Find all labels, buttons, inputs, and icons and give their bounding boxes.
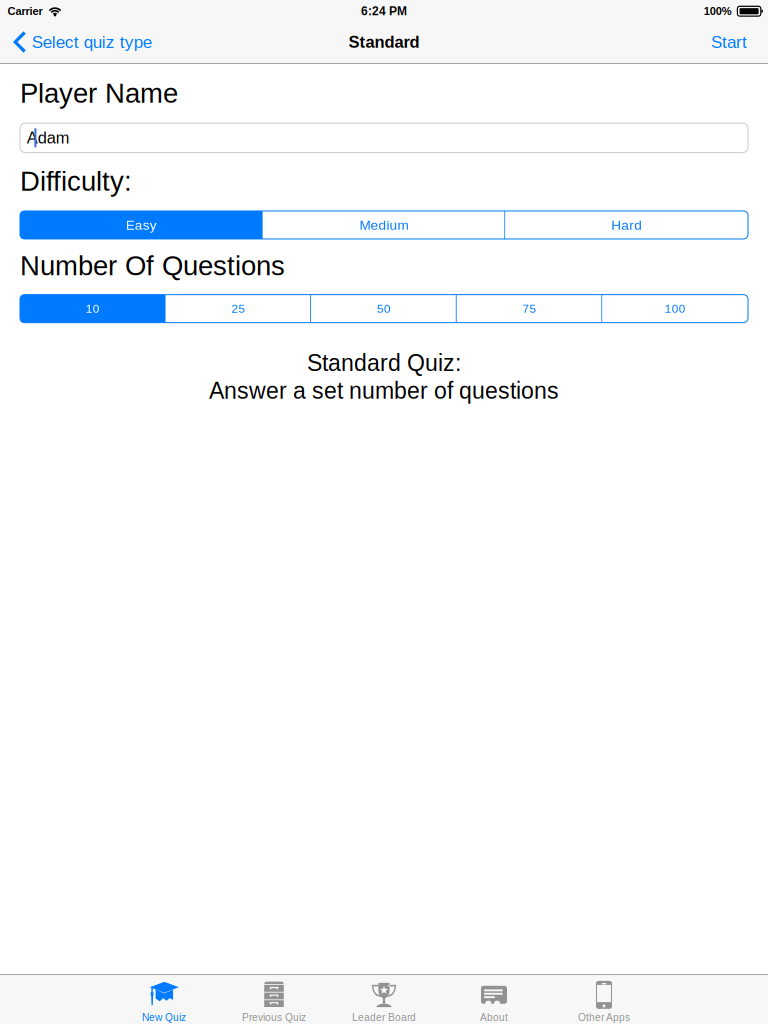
staticText: 25 [231,302,245,315]
staticText: Number Of Questions [20,250,285,281]
button[interactable]: About [439,974,549,1024]
button[interactable]: 100 [602,295,748,323]
button[interactable]: Hard [505,211,748,239]
button[interactable]: 75 [457,295,602,323]
staticText: Carrier [7,5,42,17]
staticText: 50 [377,302,391,315]
button[interactable]: New Quiz [109,974,219,1024]
button[interactable]: Adam [20,123,748,153]
button[interactable]: 50 [311,295,457,323]
button[interactable]: Select quiz type [0,20,162,64]
staticText: Hard [611,217,642,233]
staticText: Start [711,32,747,52]
staticText: Medium [359,217,408,233]
button[interactable]: Leader Board [329,974,439,1024]
staticText: Standard [348,33,419,51]
staticText: Other Apps [578,1012,630,1023]
button[interactable]: 25 [166,295,311,323]
staticText: Adam [27,129,70,147]
button[interactable]: Easy [20,211,263,239]
staticText: Standard Quiz: [307,350,461,376]
staticText: Difficulty: [20,166,132,196]
staticText: Leader Board [352,1012,416,1023]
button[interactable]: Previous Quiz [219,974,329,1024]
staticText: Previous Quiz [242,1012,306,1023]
staticText: Select quiz type [32,32,152,52]
staticText: 100% [704,5,732,17]
staticText: 100 [665,302,686,315]
button[interactable]: Other Apps [549,974,659,1024]
button[interactable]: Medium [263,211,505,239]
staticText: 75 [523,302,537,315]
staticText: Answer a set number of questions [209,378,559,404]
button[interactable]: Start [697,20,768,64]
button[interactable]: 10 [20,295,166,323]
staticText: 10 [86,302,100,315]
staticText: 6:24 PM [361,4,407,18]
staticText: Player Name [20,78,178,109]
staticText: New Quiz [142,1012,186,1023]
staticText: Easy [126,217,157,233]
staticText: About [480,1012,508,1023]
